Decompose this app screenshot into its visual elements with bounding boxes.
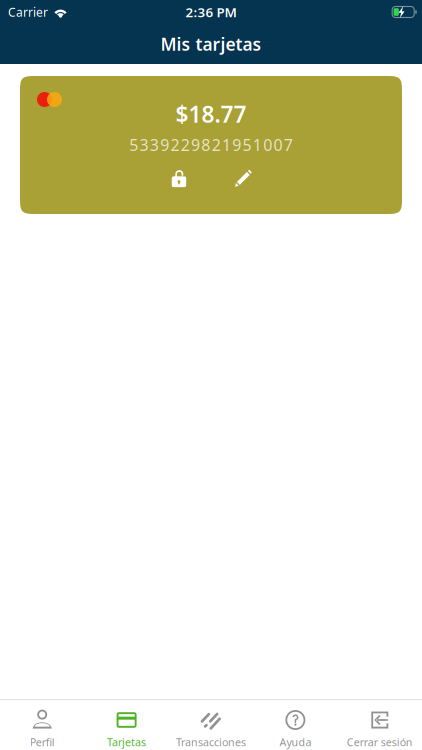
button[interactable]: Bloquear tarjeta (160, 165, 198, 191)
button[interactable]: Cerrar sesión (338, 700, 422, 750)
button[interactable]: Perfil (0, 700, 84, 750)
staticText: $18.77 (175, 99, 246, 129)
staticText: Carrier (8, 4, 48, 20)
staticText: Mis tarjetas (160, 32, 261, 55)
button[interactable]: Ayuda (253, 700, 338, 750)
staticText: 2:36 PM (185, 3, 236, 21)
button[interactable]: Tarjetas (84, 700, 169, 750)
staticText: Tarjetas (107, 735, 146, 749)
staticText: Ayuda (279, 735, 311, 749)
staticText: Perfil (30, 735, 55, 749)
button[interactable]: Editar tarjeta (224, 165, 262, 191)
button[interactable]: Transacciones (169, 700, 253, 750)
staticText: 5339229821951007 (129, 134, 293, 155)
staticText: Transacciones (176, 735, 246, 749)
staticText: Cerrar sesión (347, 735, 413, 749)
